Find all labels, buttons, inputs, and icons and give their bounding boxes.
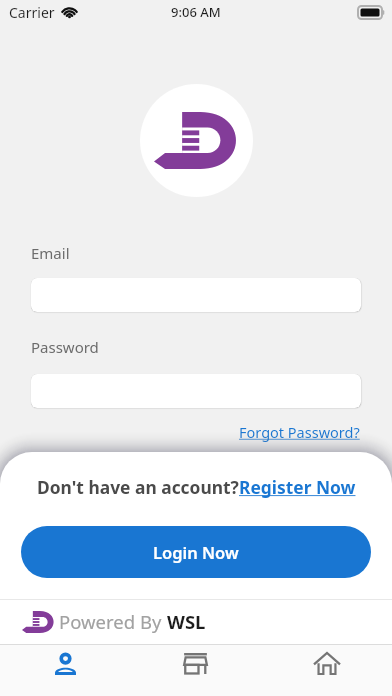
staticText: Carrier — [9, 3, 55, 22]
staticText: Login Now — [153, 541, 239, 563]
staticText: Powered By — [59, 609, 167, 634]
button[interactable]: Home — [261, 645, 392, 696]
button[interactable]: Login Now — [21, 526, 371, 578]
button[interactable]: Store — [130, 645, 261, 696]
staticText: 9:06 AM — [171, 3, 221, 21]
staticText: WSL — [167, 609, 206, 634]
button[interactable]: Forgot Password? — [239, 422, 360, 442]
staticText: Don't have an account? — [37, 475, 239, 499]
staticText: Password — [31, 337, 99, 357]
staticText: Email — [31, 243, 70, 263]
button[interactable]: Account — [0, 645, 130, 696]
button[interactable]: Register Now — [239, 475, 356, 499]
